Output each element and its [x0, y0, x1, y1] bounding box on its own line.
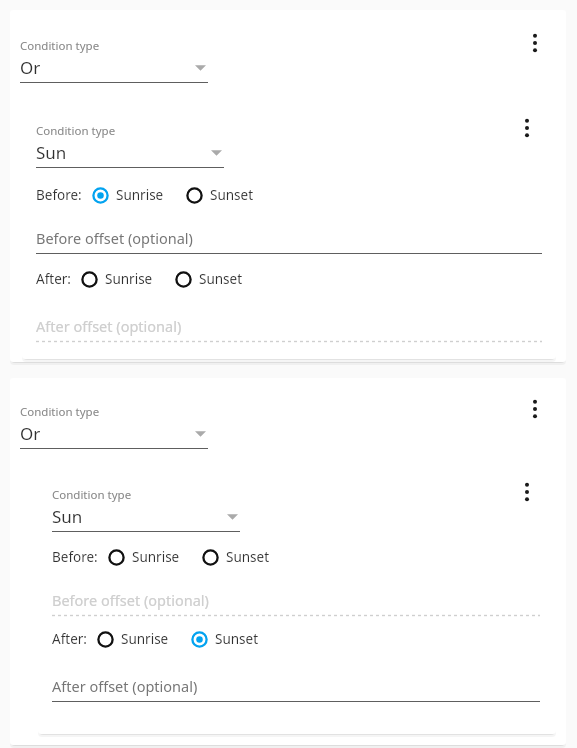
button[interactable]: After offset (optional) — [52, 676, 540, 702]
button[interactable]: Sunset — [175, 270, 243, 288]
staticText: Sunrise — [121, 630, 169, 648]
button[interactable]: Sunset — [186, 186, 254, 204]
staticText: Sunset — [226, 548, 270, 566]
button[interactable]: Condition type — [20, 38, 208, 83]
staticText: Condition type — [36, 123, 116, 139]
staticText: After: — [52, 630, 87, 648]
staticText: Sunrise — [116, 186, 164, 204]
button[interactable]: Condition type — [20, 404, 208, 449]
staticText: Condition type — [20, 38, 100, 54]
staticText: Sunset — [215, 630, 259, 648]
staticText: Sunrise — [105, 270, 153, 288]
staticText: After: — [36, 270, 71, 288]
staticText: After offset (optional) — [52, 676, 198, 696]
staticText: Before offset (optional) — [52, 590, 209, 610]
staticText: Before: — [36, 186, 82, 204]
staticText: After offset (optional) — [36, 316, 182, 336]
staticText: Sunrise — [132, 548, 180, 566]
button[interactable]: Sunset — [202, 548, 270, 566]
staticText: Sun — [52, 505, 83, 528]
button[interactable]: Sunrise — [108, 548, 180, 566]
button[interactable]: More options — [516, 113, 538, 143]
staticText: Condition type — [20, 404, 100, 420]
button[interactable]: More options — [524, 394, 546, 424]
staticText: Condition type — [52, 487, 132, 503]
staticText: Sunset — [199, 270, 243, 288]
button[interactable]: More options — [516, 477, 538, 507]
button[interactable]: Sunset — [191, 630, 259, 648]
button[interactable]: More options — [524, 28, 546, 58]
button[interactable]: Sunrise — [92, 186, 164, 204]
button[interactable]: Before offset (optional) — [36, 228, 542, 254]
button[interactable]: Sunrise — [97, 630, 169, 648]
staticText: Sunset — [210, 186, 254, 204]
staticText: Sun — [36, 141, 67, 164]
staticText: Before: — [52, 548, 98, 566]
staticText: Or — [20, 56, 41, 79]
staticText: Before offset (optional) — [36, 228, 193, 248]
button[interactable]: Sunrise — [81, 270, 153, 288]
staticText: Or — [20, 422, 41, 445]
button[interactable]: Condition type — [36, 123, 224, 168]
button[interactable]: Before offset (optional) — [52, 590, 540, 616]
button[interactable]: Condition type — [52, 487, 240, 532]
button[interactable]: After offset (optional) — [36, 316, 542, 342]
